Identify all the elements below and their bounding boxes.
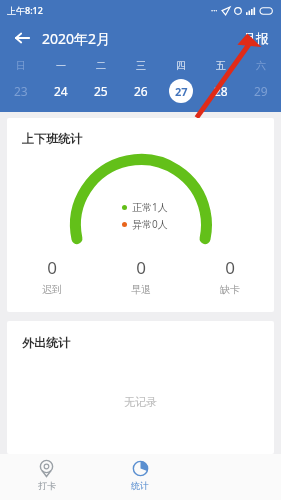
staticText: 24 — [54, 83, 68, 99]
staticText: 四 — [176, 59, 186, 72]
staticText: 2020年2月 — [42, 29, 111, 48]
staticText: 29 — [254, 83, 268, 99]
staticText: 异常0人 — [132, 217, 168, 231]
staticText: 迟到 — [42, 283, 62, 296]
staticText: 统计 — [131, 480, 149, 491]
staticText: ··· — [211, 5, 218, 16]
staticText: 27 — [175, 84, 188, 99]
staticText: 五 — [216, 59, 226, 72]
staticText: 正常1人 — [132, 200, 168, 214]
button[interactable]: Back — [6, 22, 38, 54]
staticText: 0 — [225, 256, 235, 279]
staticText: 上下班统计 — [22, 131, 82, 146]
staticText: 六 — [256, 59, 266, 72]
button[interactable]: 统计 — [93, 454, 187, 500]
staticText: 0 — [47, 256, 57, 279]
button[interactable]: 26 — [121, 74, 161, 108]
staticText: 早退 — [131, 283, 151, 296]
staticText: 一 — [56, 59, 66, 72]
staticText: 26 — [134, 83, 148, 99]
button[interactable]: 打卡 — [0, 454, 93, 500]
button[interactable]: 月报 — [231, 24, 281, 52]
button[interactable]: 外出统计 — [7, 321, 274, 454]
staticText: 23 — [14, 83, 28, 99]
button[interactable]: 0 — [185, 256, 274, 296]
staticText: 月报 — [243, 30, 269, 46]
staticText: 0 — [136, 256, 146, 279]
staticText: 打卡 — [38, 480, 56, 491]
staticText: 日 — [16, 59, 26, 72]
button[interactable]: 25 — [81, 74, 121, 108]
staticText: 28 — [214, 83, 228, 99]
staticText: 缺卡 — [220, 283, 240, 296]
button[interactable]: 27 — [161, 74, 201, 108]
staticText: 二 — [96, 59, 106, 72]
button[interactable]: 23 — [0, 74, 41, 108]
button[interactable]: 28 — [201, 74, 241, 108]
button[interactable]: 29 — [241, 74, 281, 108]
button[interactable]: 0 — [96, 256, 185, 296]
button[interactable]: 0 — [7, 256, 96, 296]
staticText: 三 — [136, 59, 146, 72]
staticText: 25 — [94, 83, 108, 99]
button[interactable]: 上下班统计 — [7, 118, 274, 312]
staticText: 无记录 — [124, 395, 157, 409]
staticText: 上午8:12 — [7, 4, 43, 16]
button[interactable]: 24 — [41, 74, 81, 108]
staticText: 外出统计 — [22, 335, 70, 350]
